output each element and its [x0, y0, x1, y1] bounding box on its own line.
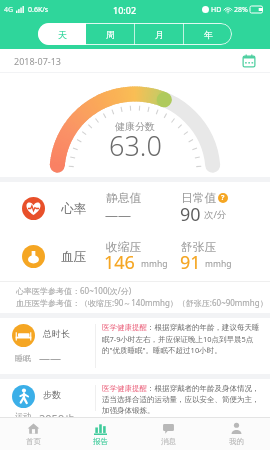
staticText: 舒张压	[181, 240, 217, 255]
staticText: 医学健康提醒：根据穿戴者的年龄及身体情况，适当选择合适的运动量，应以安全、简便为…	[102, 384, 264, 415]
staticText: 日常值	[181, 191, 217, 206]
staticText: 步数	[43, 389, 61, 400]
staticText: 2018-07-13	[14, 55, 61, 67]
button[interactable]: 我的	[202, 418, 270, 450]
button[interactable]: 周	[86, 23, 134, 45]
staticText: 静息值	[106, 191, 142, 206]
staticText: ——	[105, 206, 132, 224]
button[interactable]: Heart rate	[22, 197, 45, 220]
staticText: 天	[58, 29, 67, 40]
button[interactable]: 月	[135, 23, 183, 45]
staticText: 周	[106, 29, 115, 40]
button[interactable]: 消息	[134, 418, 202, 450]
staticText: 睡眠	[15, 353, 31, 363]
staticText: 28%	[234, 5, 248, 15]
staticText: 心率	[61, 201, 87, 217]
staticText: 次/分	[204, 208, 227, 221]
staticText: 146	[104, 250, 135, 275]
staticText: 总时长	[43, 328, 70, 339]
staticText: mmhg	[205, 258, 232, 270]
staticText: 月	[155, 29, 164, 40]
button[interactable]: Pick date	[242, 54, 256, 68]
staticText: 0.6K/s	[28, 5, 49, 15]
staticText: 收缩压	[106, 240, 142, 255]
staticText: 10:02	[113, 4, 137, 16]
button[interactable]: 天	[38, 23, 86, 45]
staticText: 2059步	[39, 411, 76, 417]
staticText: 63.0	[109, 127, 162, 164]
button[interactable]: Blood pressure	[22, 245, 45, 268]
button[interactable]: 报告	[67, 418, 134, 450]
staticText: mmhg	[141, 258, 168, 270]
staticText: ——	[39, 350, 61, 365]
staticText: 运动	[15, 411, 31, 417]
staticText: ?	[221, 193, 225, 203]
staticText: 血压	[61, 249, 87, 265]
staticText: 4G	[4, 5, 14, 15]
staticText: HD	[211, 5, 222, 15]
staticText: 我的	[229, 437, 244, 446]
staticText: 91	[180, 250, 201, 275]
staticText: 90	[180, 202, 201, 227]
button[interactable]: Help	[218, 193, 228, 203]
button[interactable]: 年	[184, 23, 232, 45]
staticText: 年	[204, 29, 213, 40]
staticText: 心率医学参考值：60~100(次/分)	[16, 285, 132, 296]
staticText: 血压医学参考值：（收缩压:90～140mmhg）（舒张压:60~90mmhg）	[16, 297, 268, 308]
staticText: 首页	[26, 437, 41, 446]
staticText: 医学健康提醒：根据穿戴者的年龄，建议每天睡眠7-9小时左右，并应保证晚上10点到…	[102, 323, 264, 355]
staticText: 消息	[161, 437, 176, 446]
button[interactable]: 首页	[0, 418, 67, 450]
staticText: 报告	[93, 437, 108, 446]
staticText: 健康分数	[115, 120, 155, 133]
